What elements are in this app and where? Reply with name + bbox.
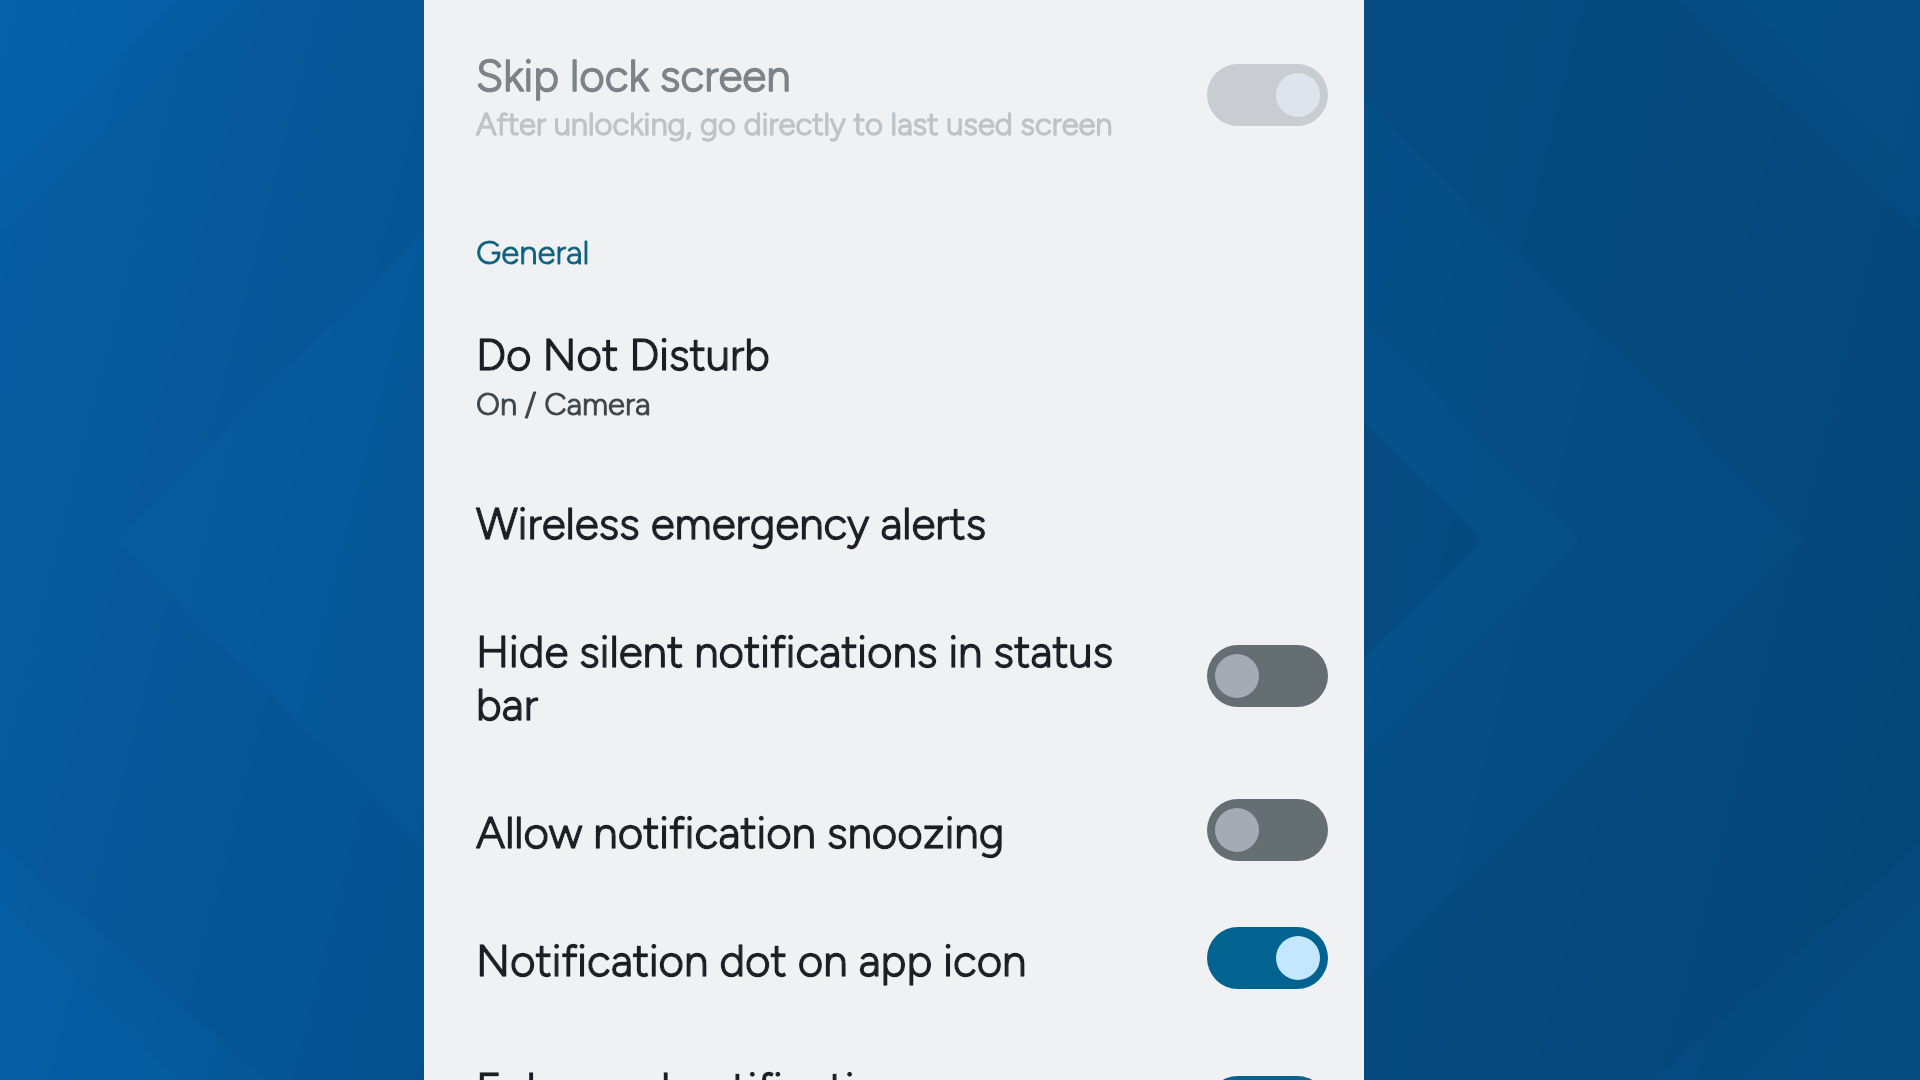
staticText: General [476,232,590,272]
button[interactable]: Notification dot on app icon [476,934,1176,987]
staticText: Hide silent notifications in status bar [476,625,1136,731]
staticText: Notification dot on app icon [476,934,1027,987]
staticText: After unlocking, go directly to last use… [476,105,1113,143]
staticText: On / Camera [476,385,651,423]
button[interactable]: Hide silent notifications in status bar [1207,645,1328,707]
button[interactable]: Notification dot on app icon [1207,927,1328,989]
staticText: Do Not Disturb [476,328,770,381]
staticText: Skip lock screen [476,49,791,102]
button[interactable]: Do Not Disturb [476,328,1176,423]
button[interactable]: Hide silent notifications in status bar [476,625,1136,731]
button[interactable]: Wireless emergency alerts [476,497,1176,550]
staticText: Enhanced notifications [476,1062,925,1080]
staticText: After unlocking, go directly to last use… [476,105,1113,143]
staticText: Skip lock screen [476,49,791,102]
staticText: Notification dot on app icon [476,934,1027,987]
staticText: Wireless emergency alerts [476,497,987,550]
button[interactable]: General [476,232,590,272]
staticText: Do Not Disturb [476,328,770,381]
staticText: On / Camera [476,385,651,423]
button[interactable]: Skip lock screen [1207,64,1328,126]
button[interactable]: Enhanced notifications [1207,1076,1328,1080]
staticText: Hide silent notifications in status bar [476,625,1136,731]
button[interactable]: Allow notification snoozing [1207,799,1328,861]
button[interactable]: Enhanced notifications [476,1062,1176,1080]
staticText: General [476,232,590,272]
staticText: Wireless emergency alerts [476,497,987,550]
staticText: Enhanced notifications [476,1062,925,1080]
button[interactable]: Skip lock screen [476,49,1176,143]
staticText: Allow notification snoozing [476,806,1005,859]
button[interactable]: Allow notification snoozing [476,806,1176,859]
staticText: Allow notification snoozing [476,806,1005,859]
